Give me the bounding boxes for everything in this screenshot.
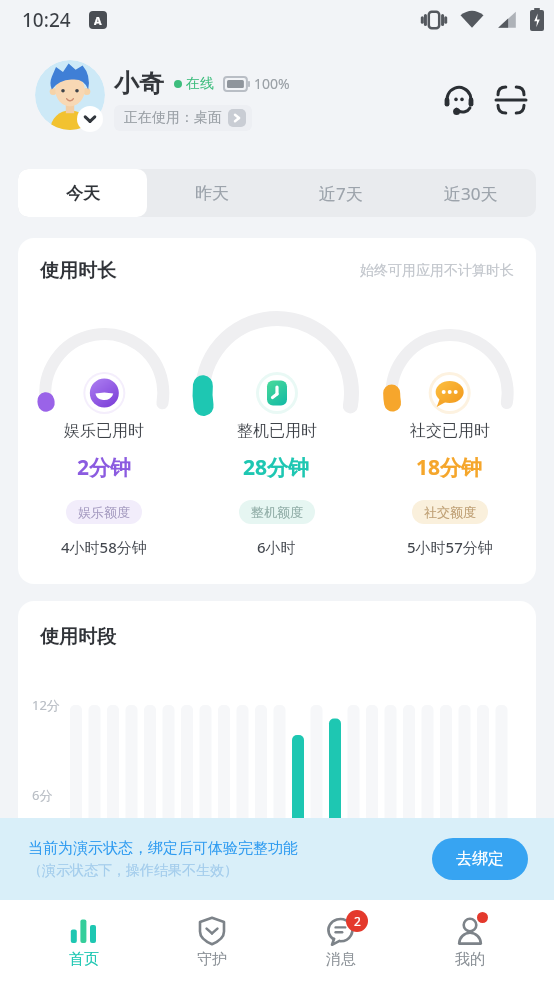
staticText: （演示状态下，操作结果不生效） — [28, 862, 238, 880]
staticText: 正在使用：桌面 — [124, 109, 222, 127]
staticText: 28分钟 — [243, 453, 310, 482]
staticText: 我的 — [455, 950, 485, 969]
staticText: 娱乐额度 — [78, 504, 130, 520]
staticText: 5小时57分钟 — [407, 537, 493, 557]
staticText: 今天 — [66, 183, 100, 204]
button[interactable]: 近7天 — [276, 169, 406, 217]
button[interactable]: 昨天 — [147, 169, 276, 217]
staticText: 守护 — [197, 950, 227, 969]
staticText: 整机额度 — [251, 504, 303, 520]
staticText: 昨天 — [195, 183, 229, 204]
staticText: 100% — [254, 74, 290, 93]
button[interactable]: 近30天 — [406, 169, 536, 217]
staticText: 使用时长 — [40, 259, 116, 283]
staticText: 消息 — [326, 950, 356, 969]
staticText: A — [94, 13, 102, 28]
button[interactable]: 首页 — [20, 900, 148, 984]
staticText: 2 — [354, 913, 361, 929]
staticText: 使用时段 — [40, 625, 116, 649]
staticText: 2分钟 — [77, 453, 132, 482]
button[interactable]: 守护 — [148, 900, 276, 984]
staticText: 12分 — [32, 696, 60, 714]
staticText: 小奇 — [114, 68, 164, 99]
staticText: 社交已用时 — [410, 421, 490, 441]
staticText: 首页 — [69, 950, 99, 969]
button[interactable]: 去绑定 — [432, 838, 528, 880]
staticText: 近30天 — [444, 182, 498, 205]
button[interactable]: 正在使用：桌面 — [114, 105, 252, 131]
staticText: 近7天 — [319, 182, 363, 205]
staticText: 娱乐已用时 — [64, 421, 144, 441]
staticText: 社交额度 — [424, 504, 476, 520]
button[interactable]: 我的 — [405, 900, 534, 984]
staticText: 在线 — [186, 75, 214, 93]
staticText: 10:24 — [22, 7, 71, 33]
staticText: 4小时58分钟 — [61, 537, 147, 557]
staticText: 6小时 — [257, 537, 296, 557]
staticText: 去绑定 — [456, 849, 504, 869]
button[interactable] — [444, 85, 474, 115]
staticText: 6分 — [32, 786, 53, 804]
button[interactable] — [498, 87, 524, 113]
staticText: 当前为演示状态，绑定后可体验完整功能 — [28, 839, 298, 858]
staticText: 始终可用应用不计算时长 — [360, 262, 514, 280]
button[interactable]: 今天 — [18, 169, 147, 217]
staticText: 18分钟 — [416, 453, 483, 482]
button[interactable]: 2 — [276, 900, 405, 984]
staticText: 整机已用时 — [237, 421, 317, 441]
